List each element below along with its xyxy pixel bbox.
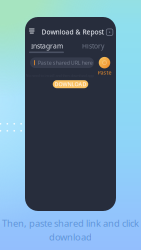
staticText: Paste shared URL here (38, 59, 93, 66)
button[interactable]: Menu (27, 26, 37, 36)
button[interactable]: Instagram (28, 40, 66, 52)
staticText: Download & Repost (41, 28, 104, 36)
button[interactable]: History (74, 40, 112, 52)
staticText: Then, paste shared link and click (2, 217, 139, 229)
button[interactable]: Paste (95, 57, 113, 76)
staticText: History (82, 42, 104, 50)
staticText: Paste (97, 69, 111, 76)
staticText: DOWNLOAD (54, 81, 86, 88)
staticText: Instagram (31, 42, 63, 50)
button[interactable]: Settings (105, 27, 115, 37)
button[interactable]: DOWNLOAD (53, 80, 88, 88)
staticText: download (49, 231, 92, 243)
